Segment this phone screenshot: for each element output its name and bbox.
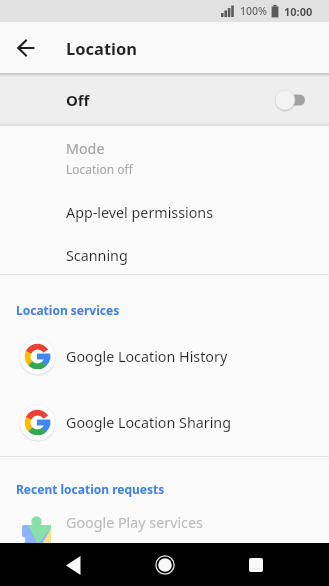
button[interactable]: Google Location Sharing: [0, 389, 329, 455]
staticText: Location services: [16, 302, 120, 318]
button[interactable]: Google Play services: [0, 489, 329, 555]
staticText: Recent location requests: [16, 481, 165, 497]
staticText: Google Location History: [66, 347, 228, 366]
staticText: Location off: [66, 161, 133, 177]
staticText: Off: [66, 90, 90, 110]
staticText: Location: [66, 37, 138, 59]
button[interactable]: [10, 32, 42, 64]
button[interactable]: Scanning: [0, 234, 329, 277]
staticText: 100%: [240, 4, 267, 18]
staticText: Google Play services: [66, 513, 203, 532]
button[interactable]: Mode: [0, 126, 329, 190]
staticText: 10:00: [284, 4, 313, 19]
button[interactable]: [62, 553, 86, 577]
staticText: Google Location Sharing: [66, 413, 231, 432]
button[interactable]: Google Location History: [0, 323, 329, 389]
button[interactable]: Off: [0, 73, 329, 126]
staticText: App-level permissions: [66, 203, 214, 222]
button[interactable]: [265, 88, 305, 112]
button[interactable]: [249, 558, 263, 572]
button[interactable]: [153, 553, 177, 577]
staticText: Scanning: [66, 246, 128, 265]
staticText: Mode: [66, 139, 105, 158]
button[interactable]: App-level permissions: [0, 190, 329, 234]
